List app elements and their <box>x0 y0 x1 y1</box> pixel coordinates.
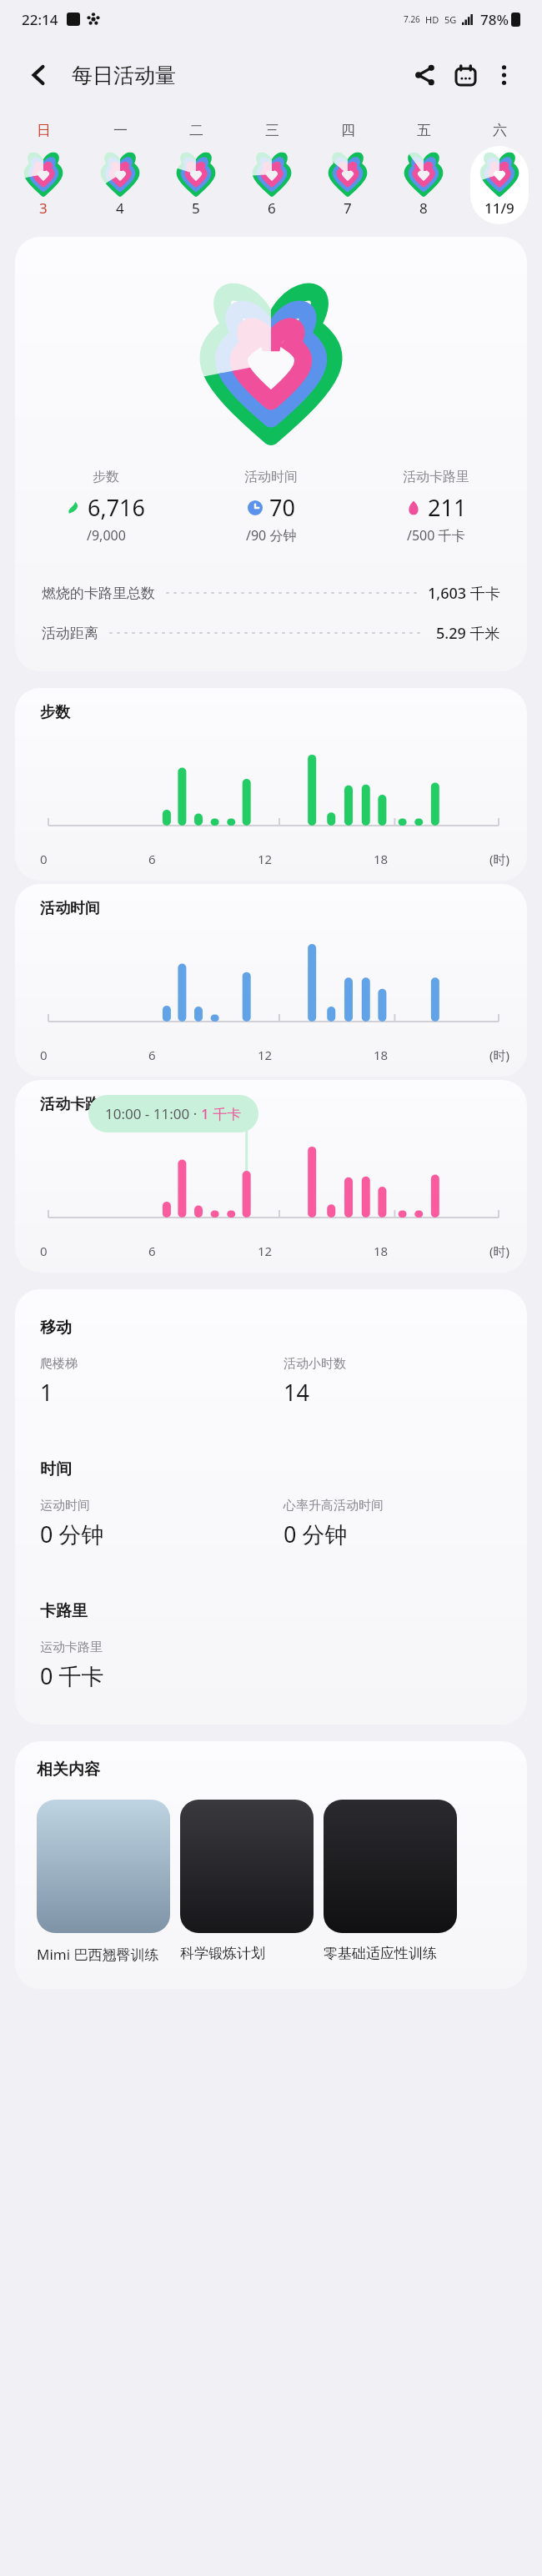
button[interactable]: 科学锻炼计划 <box>180 1800 324 1962</box>
staticText: 5G <box>444 13 457 26</box>
staticText: 0 千卡 <box>40 1660 104 1691</box>
staticText: (时) <box>489 1243 510 1259</box>
staticText: 0 <box>40 851 48 867</box>
staticText: 步数 <box>40 703 70 722</box>
button[interactable]: 6 <box>243 146 301 224</box>
staticText: 6 <box>148 851 156 867</box>
button[interactable]: 活动时间 <box>188 469 354 545</box>
staticText: 12 <box>258 851 273 867</box>
staticText: 18 <box>374 1047 389 1063</box>
staticText: 活动卡路里 <box>40 1095 115 1114</box>
staticText: 3 <box>39 198 48 218</box>
button[interactable]: 步数 <box>23 469 188 545</box>
button[interactable]: 燃烧的卡路里总数 <box>42 573 500 613</box>
staticText: 六 <box>493 122 507 139</box>
staticText: 5.29 千米 <box>436 623 500 644</box>
staticText: 燃烧的卡路里总数 <box>42 585 155 602</box>
staticText: 相关内容 <box>37 1760 100 1780</box>
staticText: 8 <box>419 198 428 218</box>
staticText: 活动时间 <box>244 469 298 485</box>
staticText: 211 <box>428 492 467 523</box>
staticText: 78% <box>480 10 509 29</box>
staticText: 12 <box>258 1243 273 1259</box>
staticText: 每日活动量 <box>72 63 176 88</box>
staticText: 移动 <box>40 1318 72 1338</box>
staticText: 70 <box>269 492 295 523</box>
staticText: 零基础适应性训练 <box>324 1945 437 1962</box>
staticText: 五 <box>417 122 431 139</box>
staticText: 12 <box>258 1047 273 1063</box>
staticText: 10:00 - 11:00 · <box>105 1104 201 1123</box>
staticText: /500 千卡 <box>407 526 465 545</box>
staticText: 步数 <box>93 469 119 485</box>
button[interactable]: 零基础适应性训练 <box>324 1800 467 1962</box>
staticText: 4 <box>116 198 124 218</box>
staticText: 0 分钟 <box>40 1519 104 1549</box>
button[interactable]: 活动距离 <box>42 613 500 653</box>
staticText: 科学锻炼计划 <box>180 1945 265 1962</box>
staticText: 18 <box>374 851 389 867</box>
staticText: 时间 <box>40 1459 72 1479</box>
staticText: 5 <box>192 198 200 218</box>
staticText: 22:14 <box>22 10 58 29</box>
button[interactable]: 5 <box>167 146 225 224</box>
staticText: (时) <box>489 851 510 867</box>
button[interactable]: Back <box>20 56 58 94</box>
staticText: HD <box>425 13 439 26</box>
staticText: 0 <box>40 1047 48 1063</box>
staticText: /9,000 <box>87 526 126 545</box>
button[interactable]: Mimi 巴西翘臀训练 <box>37 1800 180 1964</box>
staticText: 卡路里 <box>40 1601 88 1621</box>
staticText: 运动时间 <box>40 1498 90 1514</box>
button[interactable]: 活动卡路里 <box>354 469 519 545</box>
staticText: 运动卡路里 <box>40 1640 103 1655</box>
staticText: 0 分钟 <box>284 1519 348 1549</box>
staticText: 6 <box>268 198 276 218</box>
staticText: /90 分钟 <box>246 526 297 545</box>
staticText: 6 <box>148 1243 156 1259</box>
button[interactable]: 4 <box>91 146 149 224</box>
staticText: 6 <box>148 1047 156 1063</box>
button[interactable]: Calendar <box>445 55 485 95</box>
staticText: 6,716 <box>88 492 146 523</box>
staticText: 活动小时数 <box>284 1356 346 1372</box>
staticText: 1 <box>40 1377 53 1408</box>
staticText: 7.26 <box>404 13 420 25</box>
button[interactable]: 10:00 - 11:00 · <box>88 1095 258 1132</box>
staticText: 0 <box>40 1243 48 1259</box>
staticText: 14 <box>284 1377 309 1408</box>
button[interactable]: 8 <box>394 146 453 224</box>
staticText: 7 <box>344 198 352 218</box>
staticText: (时) <box>489 1047 510 1063</box>
staticText: 二 <box>189 122 203 139</box>
button[interactable]: More options <box>485 57 522 93</box>
staticText: 日 <box>37 122 51 139</box>
button[interactable]: 7 <box>319 146 377 224</box>
staticText: 心率升高活动时间 <box>284 1498 384 1514</box>
button[interactable]: 3 <box>14 146 73 224</box>
staticText: 18 <box>374 1243 389 1259</box>
staticText: 活动距离 <box>42 625 98 642</box>
staticText: 11/9 <box>484 198 514 218</box>
staticText: 爬楼梯 <box>40 1356 78 1372</box>
button[interactable]: Share <box>405 55 445 95</box>
staticText: 四 <box>341 122 355 139</box>
staticText: Mimi 巴西翘臀训练 <box>37 1945 159 1964</box>
staticText: 活动时间 <box>40 899 100 918</box>
staticText: 1 千卡 <box>201 1104 242 1123</box>
staticText: 活动卡路里 <box>403 469 469 485</box>
staticText: 1,603 千卡 <box>428 583 500 604</box>
staticText: 一 <box>113 122 128 139</box>
staticText: 三 <box>265 122 279 139</box>
button[interactable]: 11/9 <box>470 146 529 224</box>
